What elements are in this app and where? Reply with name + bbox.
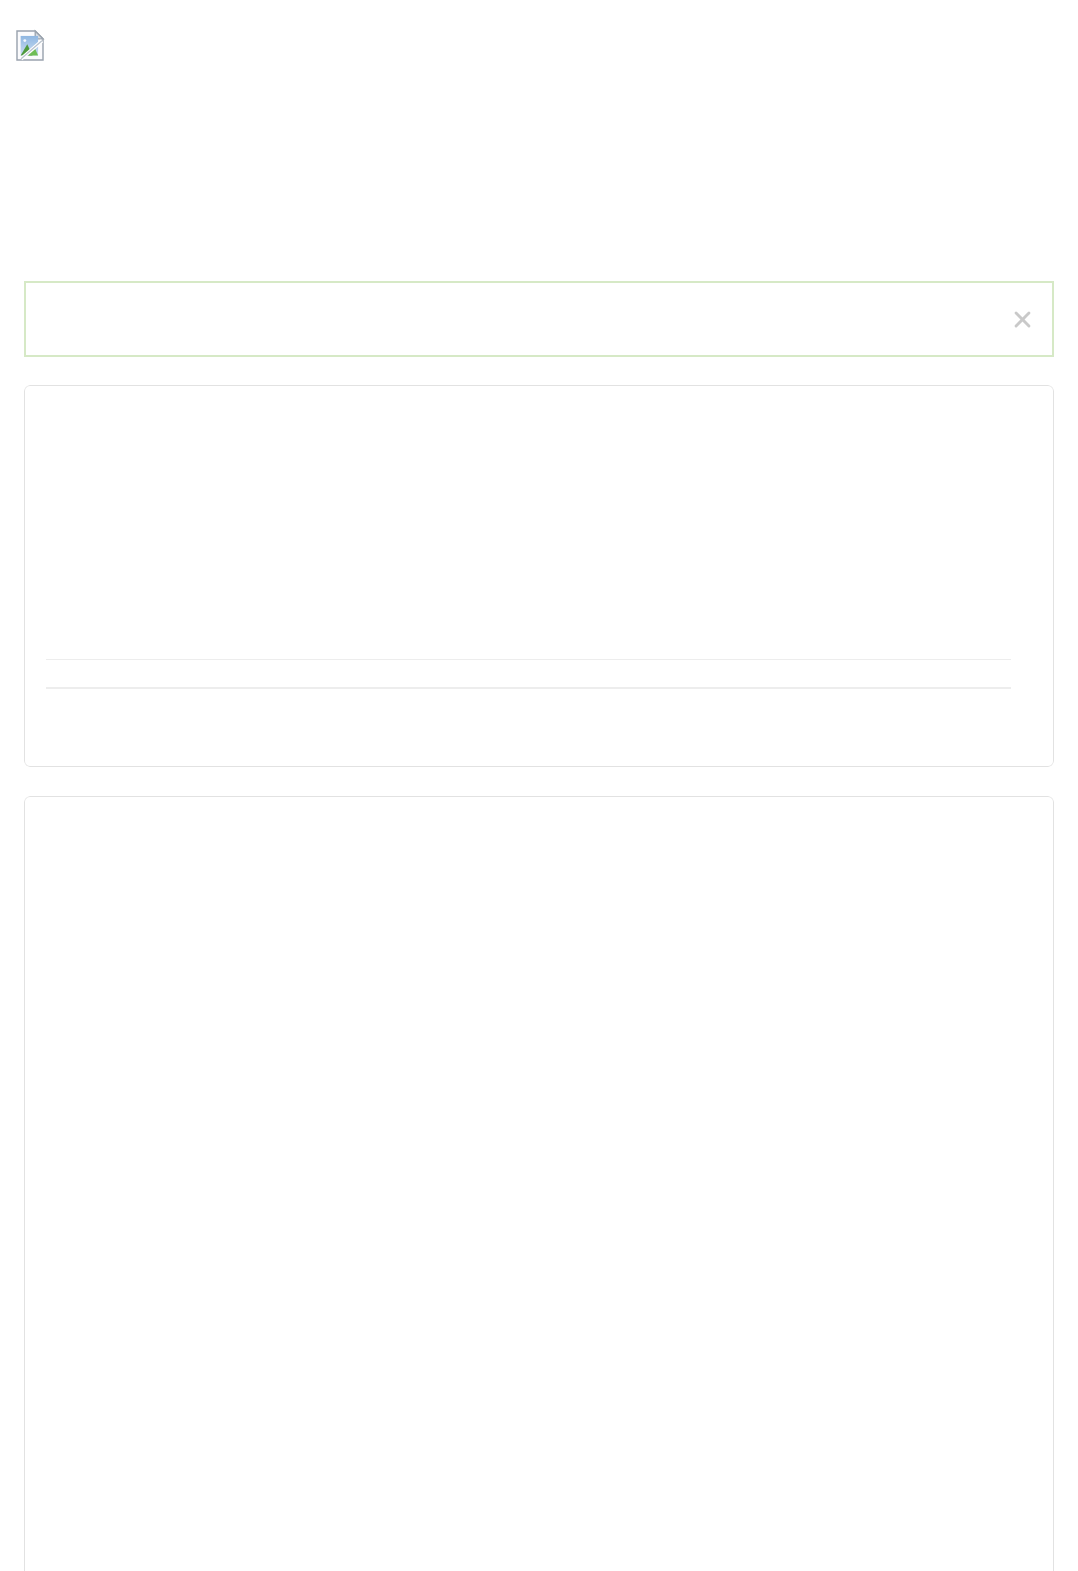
button[interactable]: Close [1002, 299, 1042, 339]
button[interactable]: Close [24, 281, 1054, 357]
other: Broken image [17, 31, 43, 60]
